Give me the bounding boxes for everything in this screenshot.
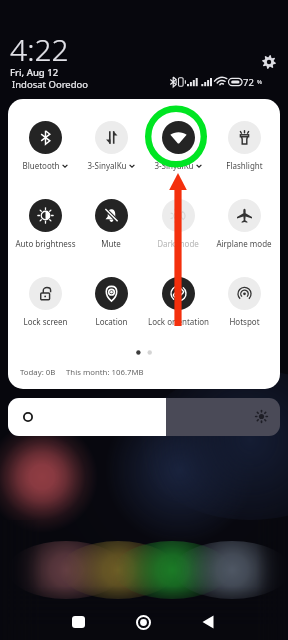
button[interactable]: Lock orientation [146,277,210,327]
button[interactable]: Home [127,606,159,638]
staticText: Bluetooth [22,160,60,171]
button[interactable]: Auto brightness [13,199,77,249]
button[interactable]: Recents [62,606,94,638]
staticText: Indosat Ooredoo [12,78,89,91]
staticText: Mute [101,238,121,249]
staticText: 4:22 [10,29,69,70]
button[interactable]: Location [79,277,143,327]
button[interactable]: Dark mode [146,199,210,249]
button[interactable]: Bluetooth [13,121,77,171]
button[interactable]: Airplane mode [212,199,276,249]
button[interactable]: Brightness [8,398,280,436]
button[interactable]: 3-SinyalKu [146,121,210,171]
staticText: % [257,78,262,86]
staticText: Hotspot [229,316,260,327]
button[interactable]: Hotspot [212,277,276,327]
staticText: Fri, Aug 12 [10,66,59,79]
staticText: 3-SinyalKu [87,160,127,171]
staticText: Today: 0B [20,367,56,378]
staticText: Lock screen [23,316,68,327]
staticText: Location [95,316,128,327]
staticText: Dark mode [157,238,199,249]
button[interactable]: 3-SinyalKu [79,121,143,171]
staticText: Airplane mode [216,238,272,249]
button[interactable]: Mute [79,199,143,249]
button[interactable]: Flashlight [212,121,276,171]
button[interactable]: Back [192,606,224,638]
staticText: Auto brightness [15,238,76,249]
button[interactable]: Settings [257,50,280,73]
staticText: 72 [243,76,254,89]
button[interactable]: Lock screen [13,277,77,327]
staticText: Lock orientation [148,316,209,327]
staticText: 3-SinyalKu [154,160,194,171]
staticText: This month: 106.7MB [66,367,144,378]
staticText: Flashlight [226,160,263,171]
